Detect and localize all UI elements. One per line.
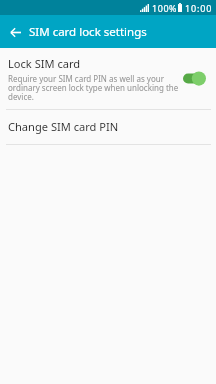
staticText: Lock SIM card <box>8 56 81 71</box>
staticText: Require your SIM card PIN as well as you… <box>8 73 180 103</box>
button[interactable]: Navigate up <box>2 16 29 48</box>
staticText: Change SIM card PIN <box>8 119 119 134</box>
staticText: SIM card lock settings <box>29 24 147 40</box>
button[interactable]: Change SIM card PIN <box>0 110 216 144</box>
button[interactable]: Lock SIM card <box>0 48 216 109</box>
staticText: 100% <box>152 2 178 14</box>
staticText: 10:00 <box>185 2 213 14</box>
